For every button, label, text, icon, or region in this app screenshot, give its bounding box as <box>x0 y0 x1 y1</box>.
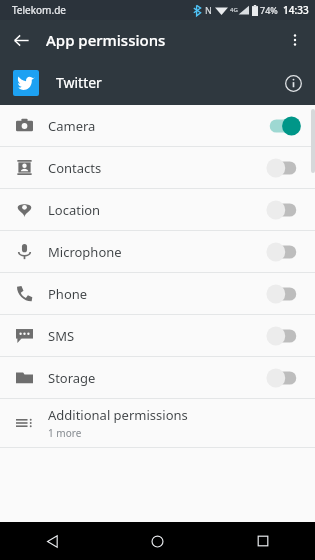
button[interactable]: Home <box>105 522 210 560</box>
staticText: Additional permissions <box>48 406 188 424</box>
staticText: Telekom.de <box>12 3 66 17</box>
button[interactable]: Back <box>0 522 105 560</box>
button[interactable]: More options <box>279 24 311 56</box>
staticText: N <box>205 4 212 16</box>
button[interactable]: Camera <box>0 105 315 146</box>
button[interactable]: Microphone <box>0 231 315 272</box>
button[interactable]: Additional permissions <box>0 399 315 447</box>
staticText: 1 more <box>48 426 82 440</box>
staticText: Twitter <box>56 73 102 92</box>
staticText: 4G <box>230 6 238 14</box>
staticText: Contacts <box>48 159 102 177</box>
staticText: SMS <box>48 327 75 345</box>
staticText: 14:33 <box>283 3 309 17</box>
button[interactable]: Storage <box>0 357 315 398</box>
button[interactable]: Location <box>0 189 315 230</box>
staticText: Location <box>48 201 101 219</box>
button[interactable]: App info <box>275 65 311 101</box>
button[interactable]: Phone <box>0 273 315 314</box>
button[interactable]: SMS <box>0 315 315 356</box>
staticText: Camera <box>48 117 96 135</box>
staticText: Storage <box>48 369 96 387</box>
staticText: Phone <box>48 285 88 303</box>
staticText: Microphone <box>48 243 122 261</box>
staticText: App permissions <box>46 30 166 50</box>
staticText: 74% <box>260 4 278 16</box>
button[interactable]: Navigate up <box>6 25 36 55</box>
button[interactable]: Recent apps <box>210 522 315 560</box>
button[interactable]: Contacts <box>0 147 315 188</box>
